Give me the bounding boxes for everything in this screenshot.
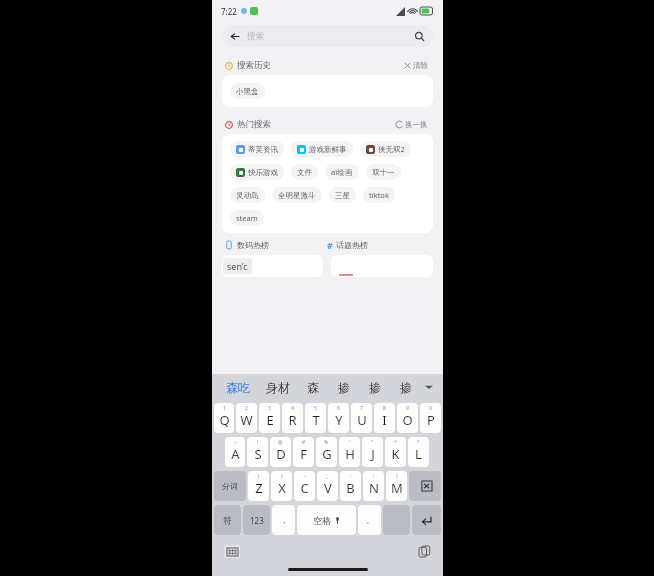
staticText: C bbox=[300, 479, 309, 497]
staticText: ? bbox=[417, 439, 420, 446]
button[interactable]: : bbox=[340, 471, 361, 501]
button[interactable]: _ bbox=[317, 471, 338, 501]
button[interactable]: 双十一 bbox=[366, 164, 401, 180]
button[interactable]: 全明星激斗 bbox=[272, 187, 322, 203]
staticText: 符 bbox=[223, 515, 232, 526]
staticText: 6 bbox=[337, 405, 340, 412]
staticText: 4 bbox=[291, 405, 294, 412]
button[interactable]: 蒂芙资讯 bbox=[230, 141, 284, 157]
staticText: tiktok bbox=[369, 190, 389, 200]
button[interactable]: 三星 bbox=[329, 187, 356, 203]
staticText: 三星 bbox=[335, 191, 350, 200]
button[interactable]: 掺 bbox=[328, 374, 359, 400]
staticText: Y bbox=[335, 411, 343, 429]
button[interactable]: Back bbox=[222, 25, 433, 47]
button[interactable]: 9 bbox=[397, 403, 418, 433]
button[interactable]: @ bbox=[270, 437, 291, 467]
button[interactable]: steam bbox=[230, 210, 264, 226]
staticText: ! bbox=[257, 439, 259, 446]
button[interactable]: 灵动岛 bbox=[230, 187, 265, 203]
staticText: B bbox=[346, 479, 355, 497]
button[interactable]: 掺 bbox=[390, 374, 421, 400]
button[interactable]: 掺 bbox=[359, 374, 390, 400]
button[interactable]: 2 bbox=[236, 403, 257, 433]
staticText: * bbox=[394, 439, 397, 446]
button[interactable]: 森 bbox=[297, 374, 328, 400]
button[interactable]: Clipboard bbox=[417, 544, 431, 558]
staticText: M bbox=[391, 479, 403, 497]
button[interactable]: 森吃 bbox=[218, 374, 258, 400]
button[interactable]: tiktok bbox=[363, 187, 395, 203]
button[interactable]: ' bbox=[339, 437, 360, 467]
staticText: 热门搜索 bbox=[237, 119, 271, 130]
button[interactable]: 4 bbox=[282, 403, 303, 433]
button[interactable]: 8 bbox=[374, 403, 395, 433]
button[interactable]: 游戏新鲜事 bbox=[291, 141, 353, 157]
button[interactable]: 空格 bbox=[297, 505, 356, 535]
staticText: 搜索 bbox=[247, 31, 264, 42]
button[interactable]: # bbox=[327, 239, 430, 251]
button[interactable]: 。 bbox=[358, 505, 381, 535]
button[interactable]: 分词 bbox=[214, 471, 246, 501]
button[interactable]: / bbox=[386, 471, 407, 501]
button[interactable]: Expand candidates bbox=[421, 374, 437, 400]
staticText: 全明星激斗 bbox=[278, 191, 316, 200]
button[interactable]: 6 bbox=[328, 403, 349, 433]
staticText: : bbox=[350, 473, 352, 480]
button[interactable]: 身材 bbox=[258, 374, 297, 400]
button[interactable]: 清除 bbox=[402, 60, 430, 71]
button[interactable]: ? bbox=[408, 437, 429, 467]
button[interactable]: ; bbox=[363, 471, 384, 501]
button[interactable]: Backspace bbox=[409, 471, 441, 501]
button[interactable]: * bbox=[385, 437, 406, 467]
staticText: 掺 bbox=[369, 380, 381, 395]
staticText: ( bbox=[258, 473, 260, 480]
staticText: sen'c bbox=[227, 260, 248, 272]
staticText: 森吃 bbox=[226, 380, 250, 395]
button[interactable]: 0 bbox=[420, 403, 441, 433]
staticText: 搜索历史 bbox=[237, 60, 271, 71]
staticText: I bbox=[382, 411, 387, 429]
button[interactable]: 快乐游戏 bbox=[230, 164, 284, 180]
staticText: " bbox=[371, 439, 374, 446]
button[interactable]: 7 bbox=[351, 403, 372, 433]
staticText: 5 bbox=[314, 405, 317, 412]
button[interactable]: 数码热榜 bbox=[225, 240, 327, 250]
button[interactable]: Enter bbox=[412, 505, 441, 535]
button[interactable]: 3 bbox=[259, 403, 280, 433]
button[interactable]: " bbox=[362, 437, 383, 467]
staticText: / bbox=[396, 473, 398, 480]
button[interactable]: ai绘画 bbox=[325, 164, 359, 180]
button[interactable]: 小黑盒 bbox=[230, 83, 265, 99]
button[interactable]: 符 bbox=[214, 505, 241, 535]
button[interactable]: - bbox=[294, 471, 315, 501]
button[interactable]: ( bbox=[248, 471, 269, 501]
button[interactable]: 5 bbox=[305, 403, 326, 433]
staticText: 空格 bbox=[313, 515, 331, 526]
staticText: 0 bbox=[429, 405, 432, 412]
staticText: # bbox=[327, 239, 333, 251]
button[interactable]: 1 bbox=[214, 403, 234, 433]
button[interactable]: 换一换 bbox=[394, 119, 430, 130]
button[interactable]: % bbox=[316, 437, 337, 467]
staticText: 9 bbox=[406, 405, 409, 412]
button[interactable]: 文件 bbox=[291, 164, 318, 180]
staticText: 游戏新鲜事 bbox=[309, 145, 347, 154]
button[interactable]: # bbox=[293, 437, 314, 467]
button[interactable]: ! bbox=[247, 437, 268, 467]
staticText: U bbox=[357, 411, 367, 429]
button[interactable]: 侠无双2 bbox=[360, 141, 411, 157]
staticText: ， bbox=[280, 515, 288, 525]
staticText: Z bbox=[255, 479, 263, 497]
staticText: 1 bbox=[223, 405, 226, 412]
staticText: 森 bbox=[307, 380, 319, 395]
button[interactable]: Keyboard layout bbox=[224, 545, 240, 558]
button[interactable]: 123 bbox=[243, 505, 270, 535]
staticText: T bbox=[312, 411, 320, 429]
button[interactable]: ~ bbox=[225, 437, 245, 467]
staticText: D bbox=[276, 445, 286, 463]
button[interactable]: ) bbox=[271, 471, 292, 501]
button[interactable]: ， bbox=[272, 505, 295, 535]
staticText: 数码热榜 bbox=[237, 240, 269, 250]
